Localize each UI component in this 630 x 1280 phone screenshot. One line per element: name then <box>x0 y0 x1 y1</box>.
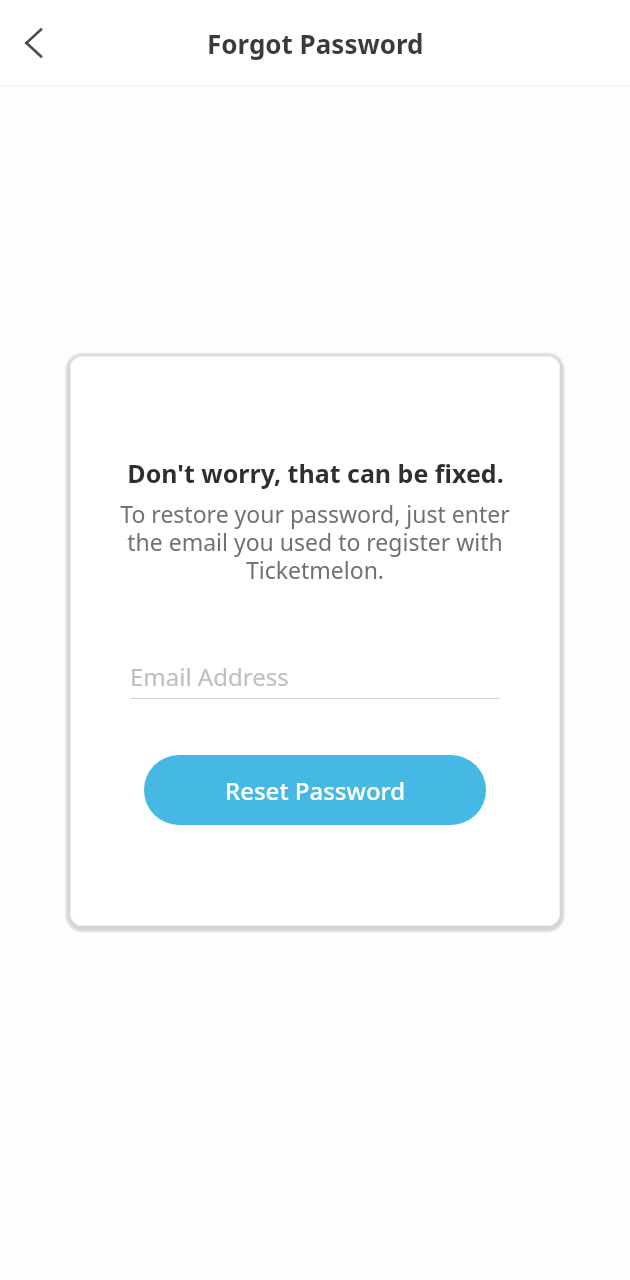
staticText: Reset Password <box>225 774 406 807</box>
button[interactable]: Email Address <box>130 654 500 699</box>
staticText: Forgot Password <box>207 26 424 61</box>
staticText: Don't worry, that can be fixed. <box>127 456 504 490</box>
staticText: To restore your password, just enter the… <box>70 498 560 586</box>
staticText: Email Address <box>130 660 289 693</box>
button[interactable]: Reset Password <box>144 755 486 825</box>
button[interactable]: Back <box>4 15 60 71</box>
